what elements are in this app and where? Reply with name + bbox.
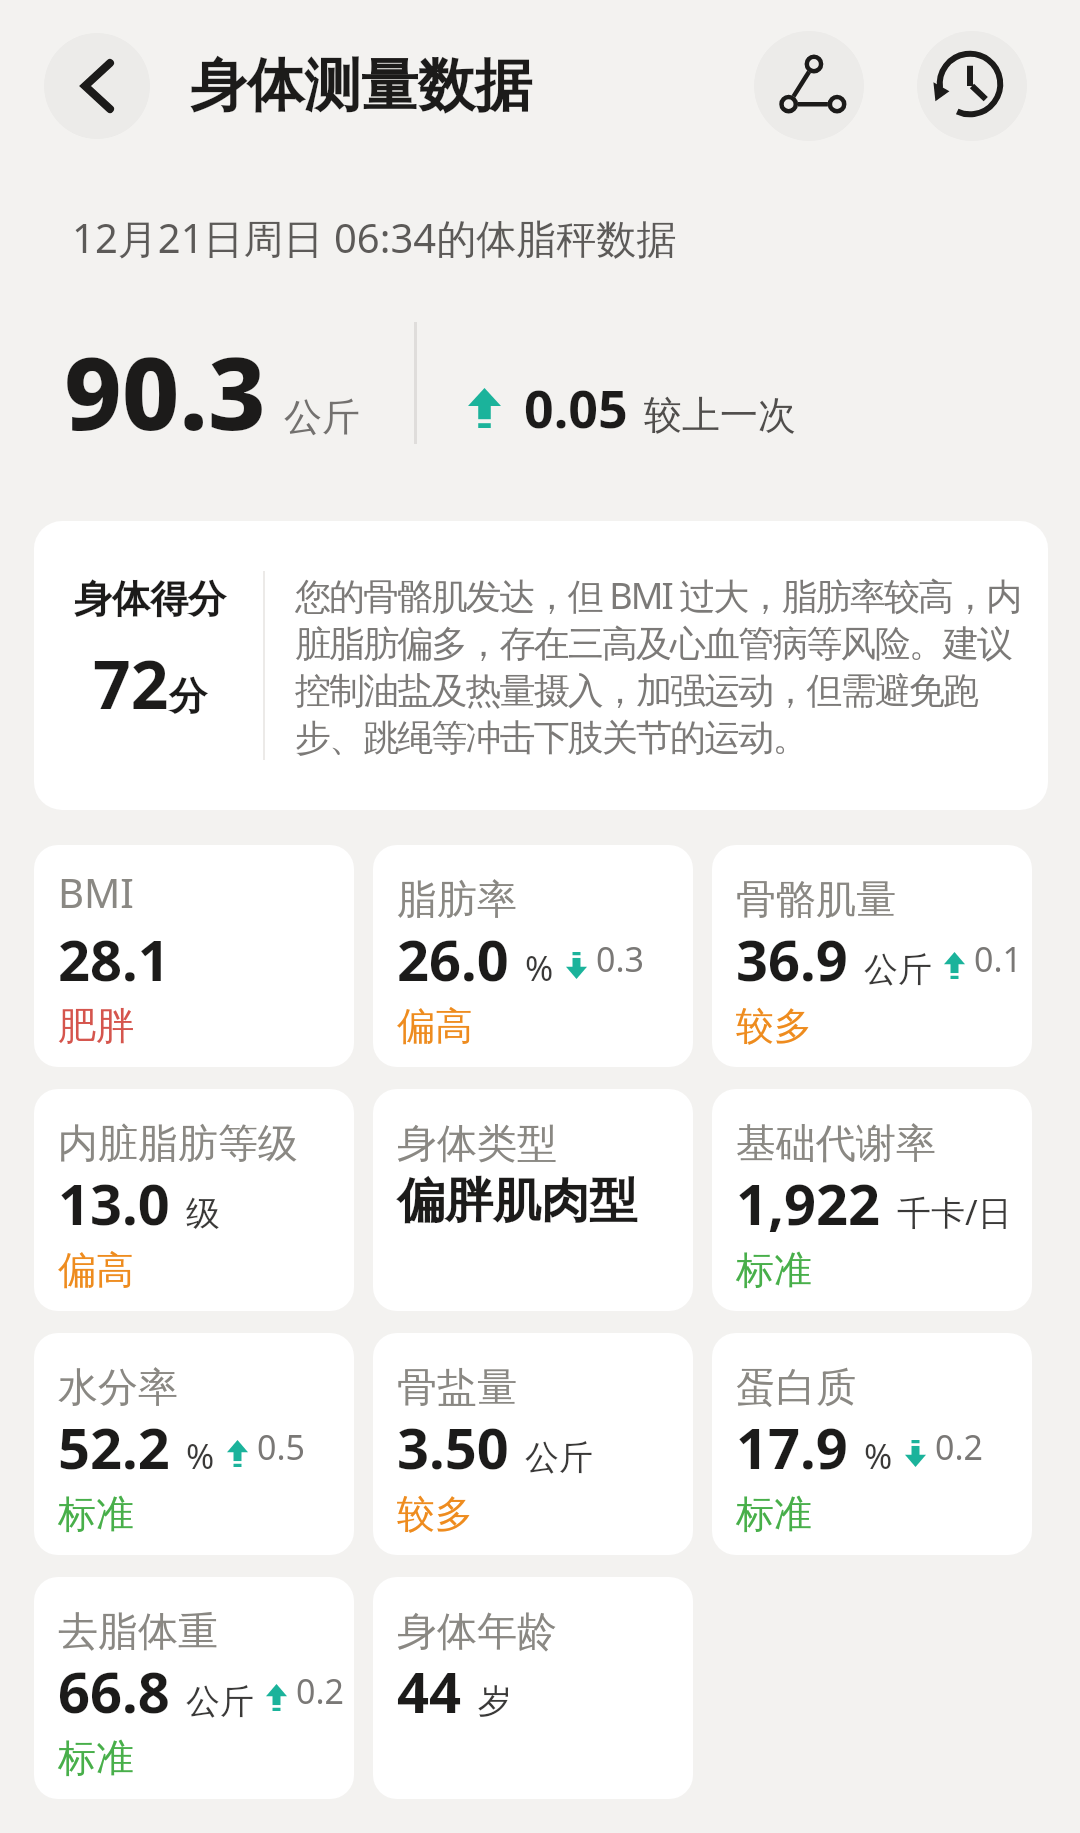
staticText: 26.0: [397, 921, 509, 997]
staticText: 较多: [736, 1002, 812, 1050]
staticText: 72: [93, 638, 169, 728]
staticText: 身体年龄: [397, 1606, 557, 1656]
staticText: 分: [169, 672, 207, 720]
staticText: 0.1: [974, 936, 1023, 982]
button[interactable]: 骨骼肌量: [712, 845, 1032, 1067]
staticText: 肥胖: [58, 1002, 134, 1050]
staticText: 骨骼肌量: [736, 874, 896, 924]
staticText: 标准: [58, 1734, 134, 1782]
staticText: %: [525, 945, 554, 991]
staticText: 28.1: [58, 921, 170, 997]
staticText: 44: [397, 1653, 462, 1729]
button[interactable]: [754, 31, 864, 141]
button[interactable]: 水分率: [34, 1333, 354, 1555]
staticText: 千卡/日: [897, 1189, 1012, 1235]
button[interactable]: BMI: [34, 845, 354, 1067]
staticText: 偏胖肌肉型: [397, 1171, 637, 1231]
button[interactable]: 基础代谢率: [712, 1089, 1032, 1311]
staticText: 0.2: [296, 1668, 345, 1714]
staticText: 0.3: [596, 936, 645, 982]
button[interactable]: 身体年龄: [373, 1577, 693, 1799]
staticText: 36.9: [736, 921, 848, 997]
staticText: 66.8: [58, 1653, 170, 1729]
staticText: 偏高: [397, 1002, 473, 1050]
button[interactable]: 脂肪率: [373, 845, 693, 1067]
staticText: 1,922: [736, 1165, 881, 1241]
staticText: 3.50: [397, 1409, 509, 1485]
staticText: 脂肪率: [397, 874, 517, 924]
button[interactable]: 蛋白质: [712, 1333, 1032, 1555]
button[interactable]: 骨盐量: [373, 1333, 693, 1555]
staticText: 级: [186, 1192, 220, 1235]
staticText: 您的骨骼肌发达，但 BMI 过大，脂肪率较高，内 脏脂肪偏多，存在三高及心血管病…: [295, 571, 1021, 761]
staticText: 52.2: [58, 1409, 170, 1485]
staticText: 0.5: [257, 1424, 306, 1470]
staticText: 身体得分: [74, 575, 226, 623]
staticText: 公斤: [864, 948, 932, 991]
staticText: 水分率: [58, 1362, 178, 1412]
staticText: 岁: [478, 1680, 512, 1723]
staticText: 偏高: [58, 1246, 134, 1294]
staticText: 标准: [736, 1490, 812, 1538]
staticText: 身体测量数据: [190, 50, 532, 122]
staticText: 12月21日周日 06:34的体脂秤数据: [72, 210, 677, 265]
staticText: %: [864, 1433, 893, 1479]
staticText: 公斤: [284, 393, 360, 441]
staticText: 基础代谢率: [736, 1118, 936, 1168]
staticText: %: [186, 1433, 215, 1479]
button[interactable]: [917, 31, 1027, 141]
staticText: 蛋白质: [736, 1362, 856, 1412]
staticText: 17.9: [736, 1409, 848, 1485]
staticText: 13.0: [58, 1165, 170, 1241]
staticText: 内脏脂肪等级: [58, 1118, 298, 1168]
staticText: 90.3: [64, 323, 266, 459]
button[interactable]: 内脏脂肪等级: [34, 1089, 354, 1311]
staticText: BMI: [58, 865, 134, 919]
button[interactable]: 身体得分: [34, 521, 1048, 810]
staticText: 公斤: [186, 1680, 254, 1723]
staticText: 身体类型: [397, 1118, 557, 1168]
staticText: 去脂体重: [58, 1606, 218, 1656]
staticText: 0.05: [524, 372, 628, 443]
staticText: 骨盐量: [397, 1362, 517, 1412]
staticText: 较多: [397, 1490, 473, 1538]
button[interactable]: 身体类型: [373, 1089, 693, 1311]
staticText: 标准: [736, 1246, 812, 1294]
staticText: 标准: [58, 1490, 134, 1538]
staticText: 0.2: [935, 1424, 984, 1470]
button[interactable]: [44, 33, 150, 139]
staticText: 较上一次: [644, 391, 796, 439]
button[interactable]: 去脂体重: [34, 1577, 354, 1799]
staticText: 公斤: [525, 1436, 593, 1479]
